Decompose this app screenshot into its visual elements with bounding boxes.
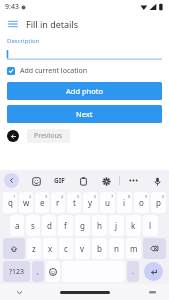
button[interactable]: t (67, 192, 81, 213)
button[interactable]: Shift (3, 238, 25, 259)
button[interactable]: s (26, 215, 40, 236)
button[interactable]: c (59, 238, 73, 259)
button[interactable]: Hide keyboard (147, 287, 157, 297)
button[interactable]: o (134, 192, 149, 213)
button[interactable]: g (75, 215, 90, 236)
staticText: q (8, 197, 13, 208)
button[interactable]: Add current location (7, 66, 162, 76)
staticText: j (115, 220, 118, 231)
staticText: Fill in details (26, 18, 79, 30)
button[interactable]: ?123 (3, 261, 30, 282)
button[interactable]: e (35, 192, 49, 213)
button[interactable]: Collapse toolbar (4, 173, 19, 188)
staticText: g (80, 220, 85, 231)
staticText: p (156, 197, 161, 208)
staticText: n (114, 243, 119, 254)
staticText: h (97, 220, 102, 231)
button[interactable]: Period (127, 261, 139, 282)
button[interactable]: Comma (32, 261, 44, 282)
button[interactable]: n (109, 238, 124, 259)
button[interactable]: w (19, 192, 33, 213)
button[interactable]: x (43, 238, 57, 259)
button[interactable]: p (151, 192, 166, 213)
button[interactable]: a (10, 215, 24, 236)
button[interactable]: i (117, 192, 132, 213)
staticText: i (123, 197, 126, 208)
button[interactable]: j (109, 215, 124, 236)
button[interactable]: Next (7, 105, 162, 123)
button[interactable]: Voice input (150, 174, 164, 188)
button[interactable]: Previous (7, 129, 70, 143)
staticText: s (31, 220, 35, 231)
staticText: e (40, 197, 45, 208)
button[interactable]: k (126, 215, 141, 236)
staticText: c (64, 243, 68, 254)
staticText: t (73, 197, 76, 208)
staticText: m (130, 243, 138, 254)
staticText: b (97, 243, 102, 254)
staticText: o (139, 197, 144, 208)
staticText: Add photo (66, 86, 103, 96)
staticText: 2 (29, 194, 32, 199)
staticText: k (131, 220, 136, 231)
staticText: u (105, 197, 110, 208)
staticText: z (32, 243, 36, 254)
staticText: Add current location (20, 66, 88, 76)
button[interactable]: Enter (144, 262, 163, 281)
button[interactable]: z (27, 238, 41, 259)
staticText: 1 (13, 194, 16, 199)
staticText: ?123 (9, 267, 25, 277)
staticText: 5 (77, 194, 80, 199)
staticText: GIF (54, 176, 65, 185)
button[interactable]: m (126, 238, 141, 259)
staticText: 9:43 (5, 2, 19, 12)
staticText: 9 (145, 194, 148, 199)
button[interactable]: Stickers (29, 174, 43, 188)
staticText: a (15, 220, 20, 231)
staticText: v (80, 243, 85, 254)
button[interactable]: d (42, 215, 56, 236)
button[interactable]: v (75, 238, 90, 259)
button[interactable]: Menu (0, 14, 26, 34)
staticText: 6 (94, 194, 97, 199)
button[interactable]: y (83, 192, 98, 213)
staticText: 8 (128, 194, 131, 199)
button[interactable]: Settings (99, 174, 113, 188)
button[interactable]: Emoji (46, 261, 60, 282)
button[interactable]: GIF (52, 174, 67, 187)
button[interactable]: l (143, 215, 158, 236)
button[interactable]: Back (14, 287, 24, 297)
button[interactable]: Clipboard (76, 174, 90, 188)
button[interactable]: More options (126, 176, 141, 185)
button[interactable]: Backspace (143, 238, 166, 259)
staticText: x (48, 243, 53, 254)
staticText: y (88, 197, 93, 208)
staticText: , (37, 267, 39, 277)
staticText: Next (76, 109, 93, 119)
staticText: f (64, 220, 67, 231)
staticText: w (23, 197, 30, 208)
button[interactable]: f (58, 215, 73, 236)
button[interactable]: Add photo (7, 82, 162, 100)
staticText: 7 (111, 194, 114, 199)
button[interactable]: u (100, 192, 115, 213)
staticText: 0 (162, 194, 165, 199)
staticText: Previous (34, 131, 63, 141)
button[interactable]: q (3, 192, 17, 213)
button[interactable]: r (51, 192, 65, 213)
button[interactable]: b (92, 238, 107, 259)
button[interactable]: h (92, 215, 107, 236)
staticText: l (149, 220, 152, 231)
staticText: r (56, 197, 60, 208)
staticText: Description (7, 37, 40, 45)
staticText: 4 (61, 194, 64, 199)
staticText: . (132, 267, 134, 277)
staticText: d (47, 220, 52, 231)
staticText: 3 (45, 194, 48, 199)
